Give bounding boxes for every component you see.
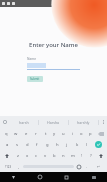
button[interactable]: v: [41, 150, 50, 161]
staticText: j: [66, 142, 68, 148]
button[interactable]: [27, 63, 80, 70]
staticText: v: [44, 153, 47, 159]
button[interactable]: g: [42, 139, 52, 150]
staticText: l: [86, 142, 88, 148]
staticText: !: [81, 153, 83, 159]
staticText: t: [45, 131, 47, 137]
button[interactable]: p: [86, 128, 95, 139]
staticText: o: [80, 131, 83, 137]
button[interactable]: q: [1, 128, 11, 139]
button[interactable]: t: [41, 128, 50, 139]
button[interactable]: ,: [15, 161, 23, 172]
button[interactable]: Shift: [1, 150, 13, 161]
button[interactable]: a: [3, 139, 12, 150]
button[interactable]: New line: [91, 161, 105, 172]
button[interactable]: j: [62, 139, 72, 150]
staticText: Enter your Name: [27, 41, 80, 49]
staticText: e: [25, 131, 28, 137]
button[interactable]: d: [22, 139, 32, 150]
staticText: d: [26, 142, 29, 148]
staticText: ?123: [5, 165, 12, 169]
staticText: p: [89, 131, 92, 137]
button[interactable]: b: [50, 150, 59, 161]
button[interactable]: z: [13, 150, 23, 161]
button[interactable]: ?123: [2, 161, 15, 172]
staticText: y: [53, 131, 56, 137]
button[interactable]: harshly: [69, 116, 98, 128]
staticText: x: [26, 153, 29, 159]
button[interactable]: k: [72, 139, 82, 150]
staticText: w: [14, 131, 18, 137]
button[interactable]: h: [52, 139, 62, 150]
staticText: h: [56, 142, 59, 148]
button[interactable]: ?: [86, 150, 95, 161]
button[interactable]: Hide keyboard: [0, 172, 26, 182]
button[interactable]: Voice input: [0, 116, 9, 128]
button[interactable]: Harsha: [39, 116, 68, 128]
button[interactable]: Enter: [92, 139, 104, 150]
staticText: g: [46, 142, 49, 148]
staticText: k: [76, 142, 79, 148]
staticText: Harsha: [47, 120, 60, 125]
button[interactable]: r: [31, 128, 41, 139]
button[interactable]: l: [82, 139, 92, 150]
button[interactable]: i: [68, 128, 77, 139]
button[interactable]: !: [77, 150, 86, 161]
button[interactable]: Submit: [27, 76, 43, 82]
staticText: harshly: [77, 120, 90, 125]
button[interactable]: e: [21, 128, 31, 139]
button[interactable]: Home: [26, 172, 53, 182]
button[interactable]: c: [32, 150, 41, 161]
button[interactable]: Recents: [53, 172, 80, 182]
button[interactable]: y: [50, 128, 59, 139]
staticText: i: [72, 131, 74, 137]
staticText: u: [62, 131, 65, 137]
staticText: a: [6, 142, 9, 148]
staticText: z: [17, 153, 19, 159]
button[interactable]: m: [68, 150, 77, 161]
button[interactable]: w: [11, 128, 21, 139]
staticText: b: [53, 153, 56, 159]
button[interactable]: s: [12, 139, 22, 150]
staticText: Name: [27, 57, 36, 61]
staticText: ?: [90, 153, 92, 159]
button[interactable]: n: [59, 150, 68, 161]
button[interactable]: f: [32, 139, 42, 150]
button[interactable]: o: [77, 128, 86, 139]
button[interactable]: Backspace: [95, 128, 106, 139]
button[interactable]: x: [23, 150, 32, 161]
staticText: q: [5, 131, 8, 137]
staticText: f: [36, 142, 38, 148]
staticText: r: [35, 131, 37, 137]
staticText: s: [16, 142, 19, 148]
staticText: .: [86, 164, 88, 169]
staticText: Submit: [30, 77, 40, 81]
staticText: c: [35, 153, 38, 159]
staticText: harsh: [19, 120, 29, 125]
button[interactable]: Shift: [95, 150, 106, 161]
button[interactable]: u: [59, 128, 68, 139]
button[interactable]: Emoji: [74, 161, 83, 172]
staticText: m: [71, 153, 75, 159]
staticText: n: [62, 153, 65, 159]
staticText: ,: [18, 164, 20, 169]
button[interactable]: harsh: [9, 116, 38, 128]
staticText: ↵: [97, 165, 100, 169]
button[interactable]: More options: [99, 116, 107, 128]
button[interactable]: Switch keyboard: [80, 172, 107, 182]
